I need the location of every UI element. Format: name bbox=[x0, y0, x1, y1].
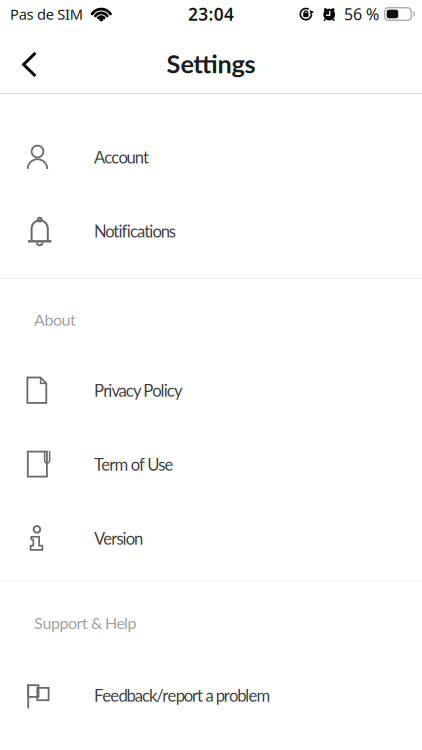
staticText: Version bbox=[94, 528, 143, 548]
staticText: Support & Help bbox=[34, 613, 136, 632]
staticText: 56 % bbox=[344, 3, 379, 25]
button[interactable]: Back bbox=[0, 34, 51, 86]
staticText: Notifications bbox=[94, 221, 176, 241]
staticText: Feedback/report a problem bbox=[94, 685, 271, 705]
button[interactable]: Privacy Policy bbox=[0, 353, 422, 427]
button[interactable]: Feedback/report a problem bbox=[0, 658, 422, 732]
button[interactable]: Term of Use bbox=[0, 427, 422, 501]
staticText: Account bbox=[94, 147, 149, 167]
staticText: Pas de SIM bbox=[10, 4, 83, 24]
button[interactable]: Version bbox=[0, 501, 422, 575]
staticText: About bbox=[34, 310, 76, 329]
staticText: Settings bbox=[166, 48, 255, 79]
staticText: Privacy Policy bbox=[94, 380, 183, 400]
button[interactable]: Account bbox=[0, 120, 422, 194]
staticText: Term of Use bbox=[94, 454, 173, 474]
staticText: 23:04 bbox=[188, 2, 234, 25]
button[interactable]: Notifications bbox=[0, 194, 422, 268]
